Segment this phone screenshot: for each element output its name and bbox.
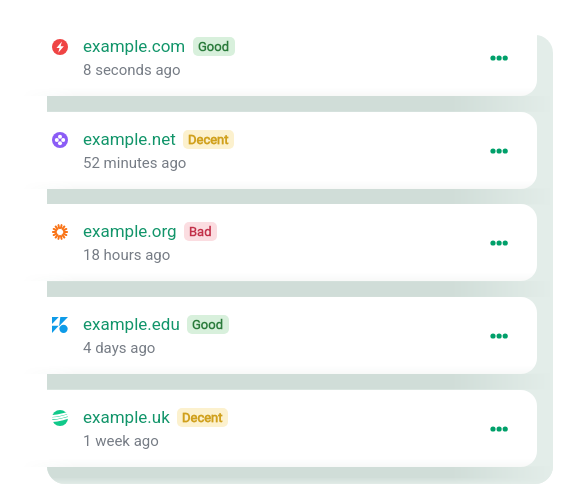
button[interactable]: More options bbox=[479, 314, 523, 358]
button[interactable]: More options bbox=[479, 221, 523, 265]
staticText: 8 seconds ago bbox=[83, 61, 181, 79]
staticText: example.org bbox=[83, 221, 177, 241]
button[interactable]: example.edu bbox=[0, 297, 537, 374]
staticText: example.uk bbox=[83, 407, 170, 427]
staticText: Decent bbox=[182, 410, 223, 425]
staticText: example.edu bbox=[83, 314, 180, 334]
button[interactable]: example.com bbox=[0, 19, 537, 96]
staticText: example.com bbox=[83, 36, 186, 56]
staticText: 52 minutes ago bbox=[83, 154, 187, 172]
staticText: 1 week ago bbox=[83, 432, 159, 450]
staticText: Bad bbox=[189, 224, 212, 239]
staticText: Good bbox=[198, 39, 230, 54]
button[interactable]: More options bbox=[479, 129, 523, 173]
button[interactable]: More options bbox=[479, 36, 523, 80]
staticText: Good bbox=[192, 317, 224, 332]
button[interactable]: example.org bbox=[0, 204, 537, 281]
button[interactable]: example.net bbox=[0, 112, 537, 189]
button[interactable]: example.uk bbox=[0, 390, 537, 467]
button[interactable]: More options bbox=[479, 407, 523, 451]
staticText: Decent bbox=[188, 132, 229, 147]
staticText: 18 hours ago bbox=[83, 246, 171, 264]
staticText: 4 days ago bbox=[83, 339, 156, 357]
staticText: example.net bbox=[83, 129, 176, 149]
